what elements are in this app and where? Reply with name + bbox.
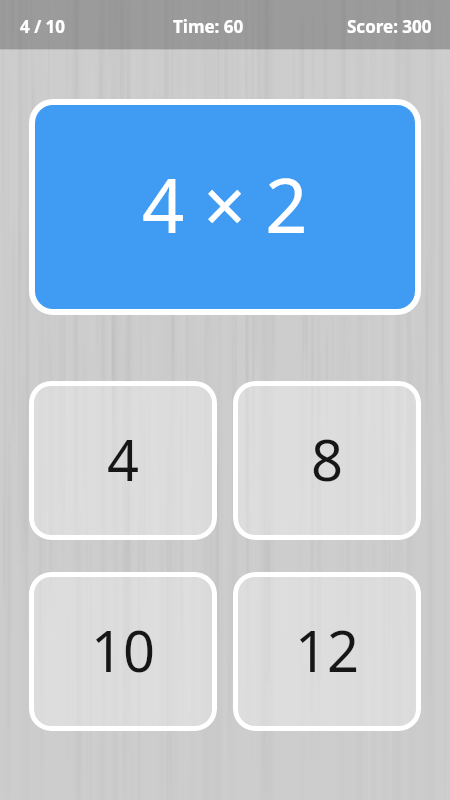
staticText: Score: 300	[347, 15, 432, 38]
staticText: 10	[91, 612, 156, 688]
staticText: Time: 60	[173, 15, 244, 38]
button[interactable]: 8	[233, 381, 421, 540]
staticText: 4 × 2	[142, 154, 308, 255]
staticText: 8	[311, 421, 344, 497]
staticText: 4	[107, 421, 140, 497]
button[interactable]: 4 × 2	[35, 105, 415, 309]
button[interactable]: 10	[29, 572, 217, 731]
staticText: 4 / 10	[20, 15, 66, 38]
button[interactable]: 12	[233, 572, 421, 731]
staticText: 12	[295, 612, 360, 688]
button[interactable]: 4	[29, 381, 217, 540]
